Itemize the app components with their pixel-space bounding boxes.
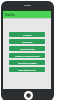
button[interactable]: BIG TEXT	[9, 39, 45, 44]
staticText: PROGRESS BAR	[18, 68, 36, 71]
staticText: INBOX NOTIFICATION	[15, 54, 40, 57]
button[interactable]: Home	[24, 91, 33, 100]
staticText: Notific	[5, 13, 16, 17]
button[interactable]: PROGRESS BAR	[9, 67, 45, 72]
button[interactable]: CUSTOM NOTIFY	[9, 60, 45, 65]
staticText: CUSTOM NOTIFY	[18, 61, 37, 64]
staticText: NOTIFY	[23, 33, 32, 36]
staticText: BIG PICTURE	[20, 47, 35, 50]
button[interactable]: BIG PICTURE	[9, 46, 45, 51]
button[interactable]: INBOX NOTIFICATION	[9, 53, 45, 58]
staticText: BIG TEXT	[22, 40, 33, 43]
button[interactable]: NOTIFY	[9, 32, 45, 37]
